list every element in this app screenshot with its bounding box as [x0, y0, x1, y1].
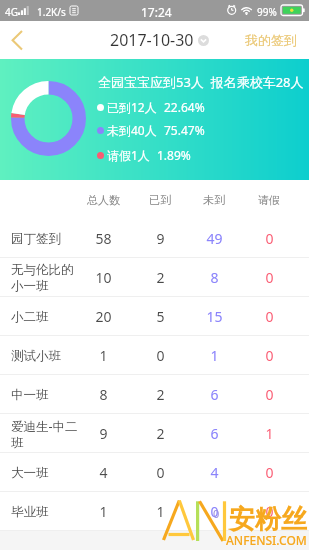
staticText: 已到12人 [107, 99, 157, 115]
staticText: 58 [95, 229, 112, 248]
button[interactable]: 大一班 [0, 453, 309, 492]
staticText: 请假1人 [107, 147, 150, 163]
staticText: 22.64% [164, 99, 205, 115]
staticText: 全园宝宝应到53人 报名乘校车28人 [98, 73, 304, 91]
staticText: 爱迪生-中二班 [11, 418, 79, 450]
staticText: 测试小班 [11, 348, 61, 364]
staticText: 已到 [149, 193, 171, 207]
staticText: 8 [210, 268, 219, 287]
staticText: 15 [206, 307, 223, 326]
staticText: 1 [265, 424, 274, 443]
staticText: 49 [206, 229, 223, 248]
staticText: 75.47% [164, 122, 205, 138]
staticText: 0 [265, 307, 274, 326]
staticText: 4 [210, 463, 219, 482]
staticText: 中一班 [11, 387, 49, 403]
button[interactable]: 我的签到 [245, 21, 297, 59]
button[interactable]: 爱迪生-中二班 [0, 414, 309, 453]
staticText: 请假 [258, 193, 280, 207]
staticText: 10 [95, 268, 112, 287]
staticText: 1 [99, 502, 108, 521]
staticText: 0 [210, 502, 219, 521]
staticText: 园丁签到 [11, 231, 61, 247]
staticText: 20 [95, 307, 112, 326]
staticText: 4G [5, 5, 18, 19]
staticText: 大一班 [11, 465, 49, 481]
staticText: 2017-10-30 [110, 29, 194, 51]
staticText: 2 [156, 424, 165, 443]
staticText: 9 [99, 424, 108, 443]
staticText: 2 [156, 385, 165, 404]
button[interactable]: 毕业班 [0, 492, 309, 531]
button[interactable]: Back [0, 21, 36, 59]
staticText: 2 [156, 268, 165, 287]
staticText: 未到 [203, 193, 225, 207]
button[interactable]: 2017-10-30 [110, 21, 209, 59]
staticText: 0 [265, 346, 274, 365]
staticText: 4 [99, 463, 108, 482]
button[interactable]: 中一班 [0, 375, 309, 414]
button[interactable]: 测试小班 [0, 336, 309, 375]
staticText: 安粉丝 [229, 503, 307, 536]
staticText: 1 [99, 346, 108, 365]
button[interactable]: 小二班 [0, 297, 309, 336]
staticText: 1 [156, 502, 165, 521]
staticText: 8 [99, 385, 108, 404]
staticText: 1.2K/s [37, 5, 66, 19]
staticText: 0 [265, 229, 274, 248]
staticText: 我的签到 [245, 32, 297, 48]
staticText: 0 [265, 502, 274, 521]
staticText: 0 [156, 463, 165, 482]
staticText: 0 [156, 346, 165, 365]
staticText: 总人数 [87, 193, 120, 207]
staticText: 0 [213, 506, 220, 521]
staticText: 0 [265, 385, 274, 404]
staticText: 9 [156, 229, 165, 248]
staticText: 0 [265, 268, 274, 287]
staticText: 6 [210, 385, 219, 404]
staticText: 0 [265, 463, 274, 482]
staticText: 1 [210, 346, 219, 365]
staticText: 无与伦比的小一班 [11, 262, 79, 293]
staticText: 6 [210, 424, 219, 443]
staticText: 99% [257, 5, 277, 19]
staticText: 5 [156, 307, 165, 326]
staticText: 未到40人 [107, 122, 157, 138]
button[interactable]: 园丁签到 [0, 219, 309, 258]
staticText: 毕业班 [11, 504, 49, 520]
staticText: 17:24 [141, 4, 172, 20]
staticText: 1.89% [157, 147, 191, 163]
staticText: ANFENSI.COM [226, 532, 307, 548]
button[interactable]: 无与伦比的小一班 [0, 258, 309, 297]
staticText: 小二班 [11, 309, 49, 325]
